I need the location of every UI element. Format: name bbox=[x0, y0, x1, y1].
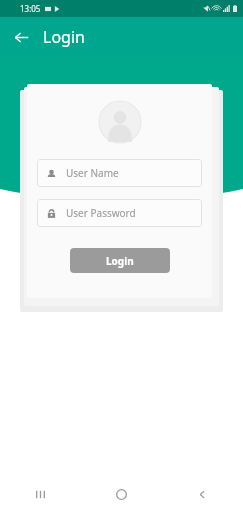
button[interactable]: Back bbox=[162, 476, 243, 512]
staticText: Login bbox=[106, 254, 134, 268]
button[interactable]: Back bbox=[6, 22, 36, 52]
button[interactable]: User Password bbox=[37, 199, 202, 227]
staticText: User Password bbox=[66, 206, 136, 220]
staticText: Login bbox=[43, 26, 85, 48]
button[interactable]: Home bbox=[81, 476, 162, 512]
button[interactable]: Recents bbox=[0, 476, 81, 512]
button[interactable]: Login bbox=[70, 248, 170, 273]
button[interactable]: User Name bbox=[37, 159, 202, 187]
staticText: User Name bbox=[66, 166, 119, 180]
staticText: 13:05 bbox=[20, 3, 41, 14]
